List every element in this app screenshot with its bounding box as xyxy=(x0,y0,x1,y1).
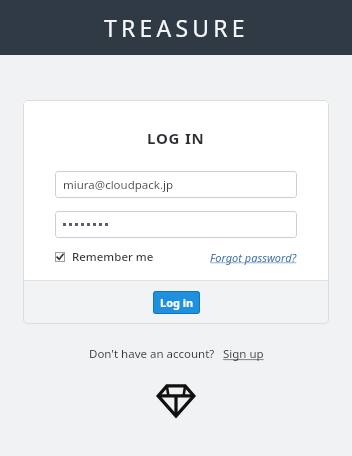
other: Treasure logo xyxy=(157,384,195,417)
staticText: Log in xyxy=(160,295,194,310)
button[interactable]: miura@cloudpack.jp xyxy=(55,171,297,198)
staticText: TREASURE xyxy=(104,12,249,43)
staticText: Don't have an account? xyxy=(89,346,215,362)
button[interactable]: Log in xyxy=(153,291,200,314)
staticText: Forgot password? xyxy=(210,250,297,265)
staticText: Remember me xyxy=(72,249,154,265)
staticText: miura@cloudpack.jp xyxy=(63,177,174,193)
staticText: Sign up xyxy=(223,346,264,362)
staticText: LOG IN xyxy=(147,128,205,148)
button[interactable] xyxy=(55,211,297,238)
button[interactable]: Forgot password? xyxy=(210,250,297,265)
button[interactable]: Sign up xyxy=(223,346,264,362)
button[interactable]: Remember me xyxy=(55,249,154,265)
